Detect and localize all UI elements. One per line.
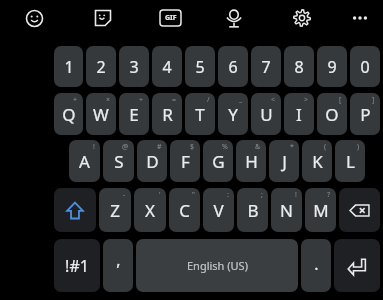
staticText: 4 [162, 56, 172, 78]
button[interactable]: P [350, 93, 380, 135]
staticText: F [181, 150, 190, 173]
staticText: " [192, 190, 195, 200]
staticText: _ [239, 95, 243, 105]
staticText: ' [159, 190, 161, 200]
staticText: ] [372, 95, 375, 105]
staticText: : [227, 190, 229, 200]
button[interactable]: , [103, 239, 133, 292]
staticText: 0 [360, 56, 370, 78]
staticText: G [212, 150, 225, 173]
staticText: @ [122, 142, 129, 152]
button[interactable]: Y [218, 93, 248, 135]
button[interactable]: E [119, 93, 149, 135]
button[interactable]: 8 [284, 46, 314, 87]
staticText: R [162, 103, 173, 126]
button[interactable]: 5 [185, 46, 215, 87]
button[interactable]: More options [342, 0, 378, 36]
button[interactable]: B [237, 188, 268, 232]
button[interactable]: 7 [251, 46, 281, 87]
staticText: Q [62, 103, 76, 126]
staticText: 2 [96, 56, 106, 78]
staticText: !#1 [65, 255, 89, 277]
button[interactable]: Enter [334, 239, 380, 292]
button[interactable]: K [302, 140, 332, 182]
staticText: * [290, 142, 294, 152]
staticText: GIF [165, 13, 177, 23]
button[interactable]: C [169, 188, 200, 232]
staticText: P [360, 103, 371, 126]
button[interactable]: 6 [218, 46, 248, 87]
staticText: 8 [294, 56, 304, 78]
staticText: . [314, 253, 319, 275]
staticText: % [222, 142, 228, 152]
staticText: - [123, 190, 126, 200]
button[interactable]: Q [54, 93, 83, 135]
staticText: K [312, 150, 323, 173]
button[interactable]: A [69, 140, 100, 182]
staticText: = [172, 95, 177, 105]
button[interactable]: H [236, 140, 266, 182]
staticText: & [255, 142, 261, 152]
button[interactable]: W [86, 93, 116, 135]
staticText: / [207, 95, 210, 105]
staticText: C [179, 199, 190, 222]
staticText: 9 [327, 56, 337, 78]
staticText: ) [357, 142, 360, 152]
button[interactable]: 4 [152, 46, 182, 87]
button[interactable]: G [203, 140, 233, 182]
staticText: English (US) [187, 258, 248, 273]
staticText: ? [327, 190, 331, 200]
staticText: U [260, 103, 273, 126]
staticText: ( [324, 142, 327, 152]
staticText: 5 [195, 56, 205, 78]
button[interactable]: 0 [350, 46, 380, 87]
staticText: A [79, 150, 90, 173]
button[interactable]: O [317, 93, 347, 135]
button[interactable]: !#1 [54, 239, 100, 292]
button[interactable]: GIF [152, 0, 188, 36]
button[interactable]: N [271, 188, 302, 232]
button[interactable]: Voice input [216, 0, 252, 36]
button[interactable]: S [103, 140, 134, 182]
button[interactable]: Backspace [339, 188, 380, 232]
staticText: ! [295, 190, 297, 200]
staticText: > [304, 95, 309, 105]
button[interactable]: Emoji [16, 0, 52, 36]
staticText: 7 [261, 56, 271, 78]
staticText: W [93, 103, 109, 126]
button[interactable]: . [301, 239, 331, 292]
button[interactable]: Stickers [85, 0, 121, 36]
button[interactable]: English (US) [136, 239, 298, 292]
button[interactable]: Shift [54, 188, 96, 232]
staticText: V [213, 199, 224, 222]
button[interactable]: D [137, 140, 167, 182]
button[interactable]: U [251, 93, 281, 135]
button[interactable]: M [305, 188, 336, 232]
button[interactable]: L [335, 140, 365, 182]
staticText: S [114, 150, 124, 173]
button[interactable]: T [185, 93, 215, 135]
staticText: D [146, 150, 159, 173]
button[interactable]: Settings [284, 0, 320, 36]
staticText: , [116, 249, 121, 271]
button[interactable]: 1 [54, 46, 83, 87]
button[interactable]: I [284, 93, 314, 135]
button[interactable]: R [152, 93, 182, 135]
button[interactable]: X [134, 188, 166, 232]
button[interactable]: Z [99, 188, 131, 232]
button[interactable]: 3 [119, 46, 149, 87]
staticText: ÷ [139, 95, 144, 105]
staticText: 1 [64, 56, 74, 78]
staticText: I [296, 103, 302, 126]
button[interactable]: F [170, 140, 200, 182]
staticText: L [346, 150, 355, 173]
staticText: T [195, 103, 205, 126]
staticText: ; [261, 190, 263, 200]
button[interactable]: V [203, 188, 234, 232]
staticText: × [106, 95, 111, 105]
button[interactable]: 2 [86, 46, 116, 87]
button[interactable]: J [269, 140, 299, 182]
staticText: M [313, 199, 329, 222]
staticText: Z [110, 199, 120, 222]
button[interactable]: 9 [317, 46, 347, 87]
